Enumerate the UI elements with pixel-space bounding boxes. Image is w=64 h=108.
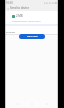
- staticText: Formats: [6, 30, 16, 33]
- button[interactable]: 2 MB: [5, 14, 58, 18]
- staticText: 10:30: [6, 1, 13, 5]
- staticText: presentation.pdf · ready to send: [12, 20, 41, 23]
- staticText: Send to device: [10, 6, 30, 10]
- button[interactable]: Back: [5, 6, 10, 11]
- button[interactable]: Send now: [19, 34, 45, 39]
- staticText: 2 MB: [16, 14, 23, 18]
- staticText: Send now: [27, 35, 38, 38]
